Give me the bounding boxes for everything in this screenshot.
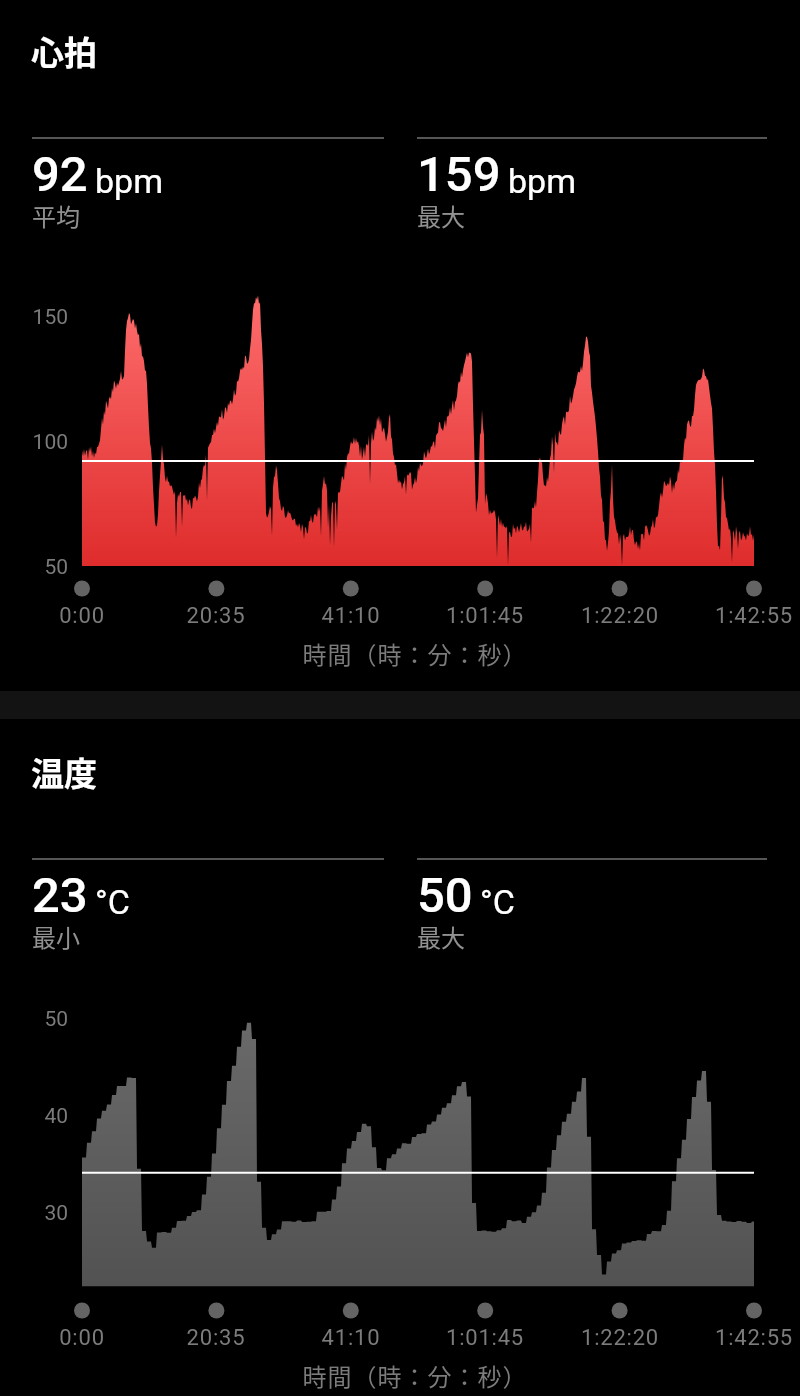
staticText: 最大 — [417, 919, 465, 954]
staticText: 1:01:45 — [415, 603, 555, 629]
staticText: 時間（時：分：秒） — [15, 636, 800, 671]
staticText: 0:00 — [12, 603, 152, 629]
staticText: 159 — [417, 146, 501, 203]
staticText: bpm — [95, 161, 163, 201]
staticText: 92 — [32, 146, 88, 203]
staticText: 40 — [0, 1104, 68, 1129]
staticText: 1:22:20 — [550, 1325, 690, 1351]
staticText: 41:10 — [281, 603, 421, 629]
staticText: °C — [480, 882, 515, 922]
staticText: 50 — [0, 555, 68, 580]
staticText: 最小 — [32, 919, 80, 954]
staticText: 23 — [32, 867, 88, 924]
staticText: 1:01:45 — [415, 1325, 555, 1351]
staticText: 150 — [0, 305, 68, 330]
staticText: 1:42:55 — [684, 603, 800, 629]
staticText: 41:10 — [281, 1325, 421, 1351]
staticText: 心拍 — [31, 27, 97, 75]
staticText: 20:35 — [146, 1325, 286, 1351]
staticText: 50 — [0, 1007, 68, 1032]
staticText: 1:22:20 — [550, 603, 690, 629]
staticText: 最大 — [417, 198, 465, 233]
staticText: 100 — [0, 430, 68, 455]
staticText: 0:00 — [12, 1325, 152, 1351]
button[interactable]: 23 — [32, 858, 384, 954]
staticText: 平均 — [32, 198, 80, 233]
button[interactable]: 92 — [32, 137, 384, 233]
staticText: °C — [95, 882, 130, 922]
staticText: 50 — [417, 867, 473, 924]
staticText: 時間（時：分：秒） — [15, 1358, 800, 1393]
staticText: 1:42:55 — [684, 1325, 800, 1351]
button[interactable]: 50 — [417, 858, 767, 954]
staticText: 20:35 — [146, 603, 286, 629]
staticText: 30 — [0, 1201, 68, 1226]
staticText: 温度 — [31, 748, 97, 796]
button[interactable]: 159 — [417, 137, 767, 233]
staticText: bpm — [508, 161, 576, 201]
